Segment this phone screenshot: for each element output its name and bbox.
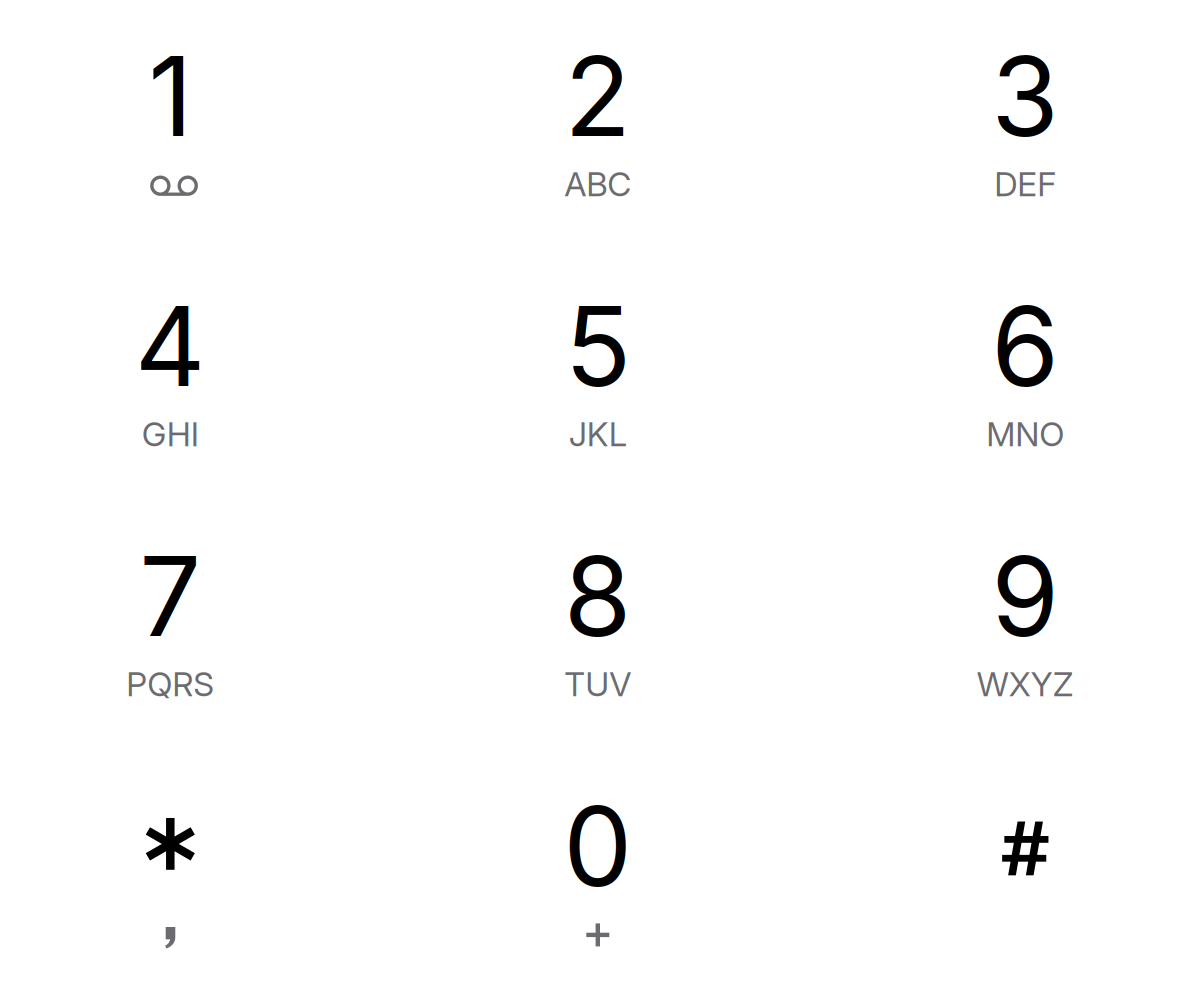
staticText: MNO [986,414,1064,454]
button[interactable]: Star, comma [43,757,297,977]
button[interactable]: 7 PQRS [43,507,297,727]
staticText: PQRS [126,664,214,704]
button[interactable]: 8 TUV [471,507,725,727]
button[interactable]: 9 WXYZ [898,507,1152,727]
staticText: 6 [991,280,1059,412]
staticText: 8 [564,530,632,662]
staticText: 5 [565,280,631,412]
button[interactable]: 3 DEF [898,7,1152,227]
staticText: 1 [148,30,192,162]
staticText: 2 [564,30,631,162]
staticText: 7 [139,530,201,662]
staticText: TUV [564,664,631,704]
staticText: GHI [142,414,199,454]
staticText: JKL [569,414,627,454]
staticText: 3 [991,30,1059,162]
button[interactable]: Pound [898,757,1152,977]
button[interactable]: 6 MNO [898,257,1152,477]
button[interactable]: 2 ABC [471,7,725,227]
button[interactable]: 4 GHI [43,257,297,477]
staticText: 4 [135,280,206,412]
staticText: WXYZ [977,664,1074,704]
staticText: 0 [563,780,632,912]
staticText: DEF [994,164,1056,204]
button[interactable]: 0 plus [471,757,725,977]
staticText: ABC [564,164,631,204]
button[interactable]: 5 JKL [471,257,725,477]
button[interactable]: 1 Voicemail [43,7,297,227]
staticText: 9 [991,530,1059,662]
